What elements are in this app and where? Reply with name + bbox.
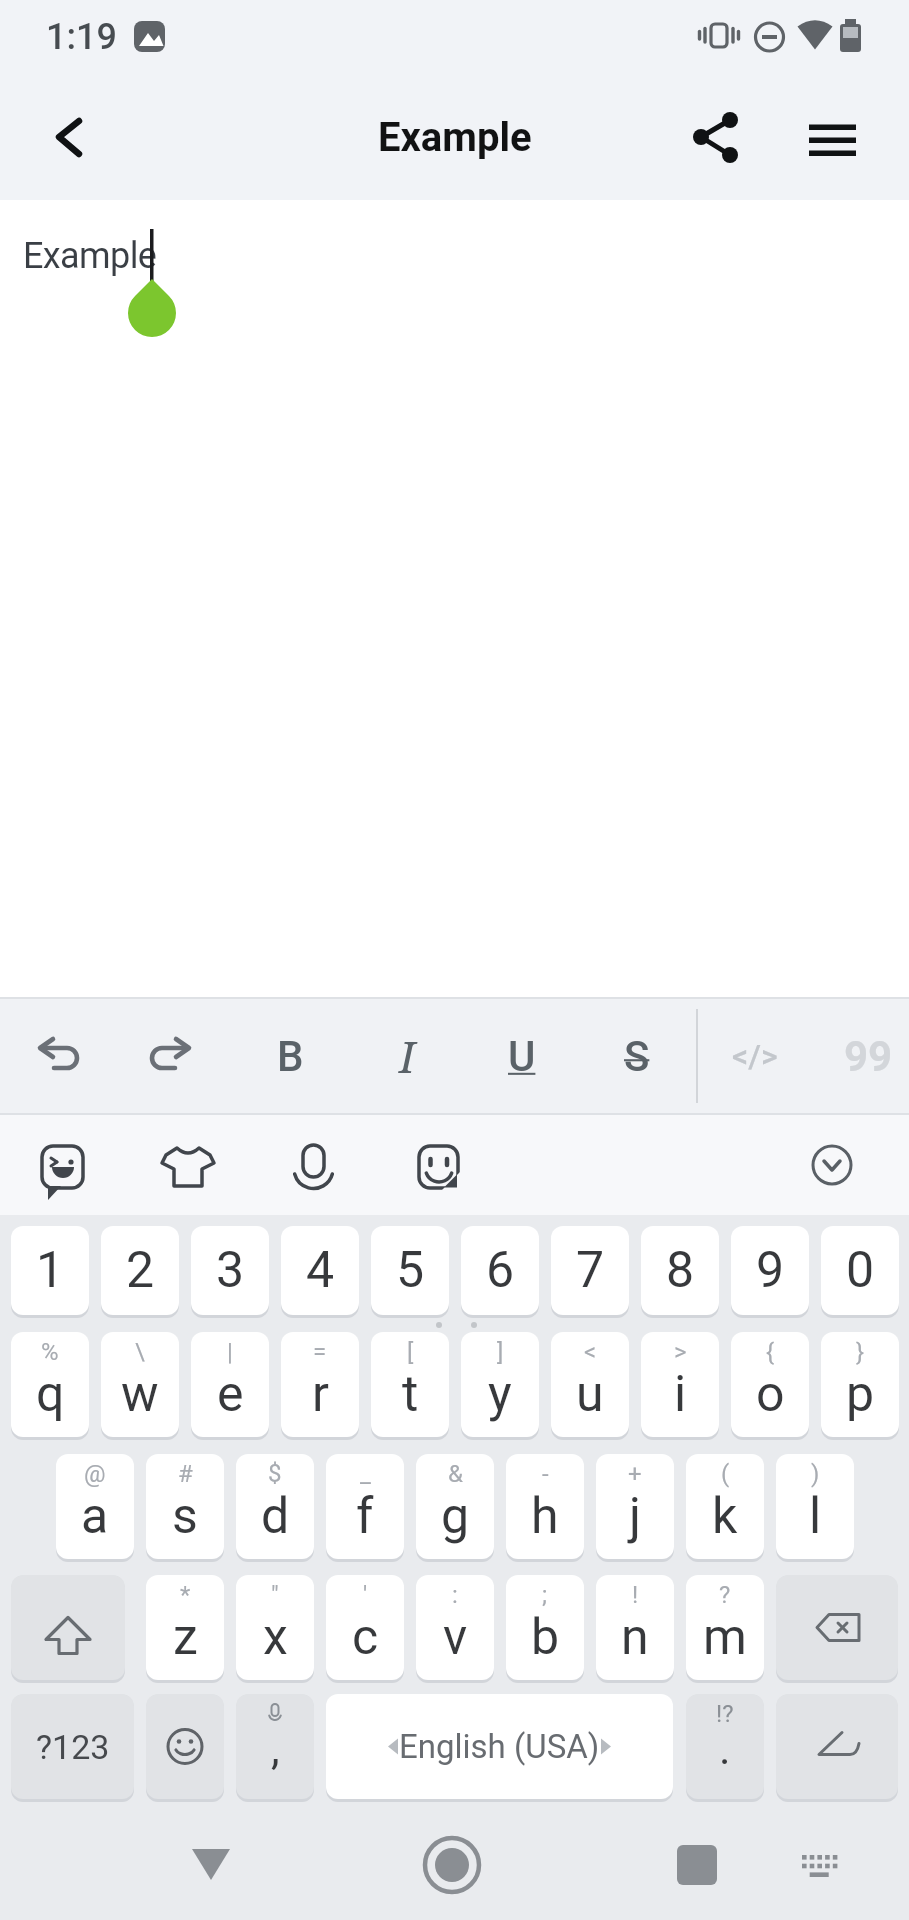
button[interactable]: !? xyxy=(686,1694,764,1799)
button[interactable]: + xyxy=(596,1454,674,1559)
staticText: 2 xyxy=(126,1241,155,1300)
staticText: q xyxy=(36,1365,65,1424)
button[interactable]: ( xyxy=(686,1454,764,1559)
button[interactable]: 9 xyxy=(731,1226,809,1315)
staticText: B xyxy=(277,1032,304,1081)
button[interactable]: * xyxy=(146,1575,224,1680)
staticText: 9 xyxy=(756,1241,785,1300)
button[interactable]: 5 xyxy=(371,1226,449,1315)
button[interactable]: I xyxy=(357,1006,457,1106)
button[interactable]: , xyxy=(236,1694,314,1799)
button[interactable] xyxy=(138,1115,238,1215)
button[interactable] xyxy=(768,1820,868,1920)
staticText: _ xyxy=(360,1460,371,1488)
button[interactable]: - xyxy=(506,1454,584,1559)
button[interactable]: 0 xyxy=(821,1226,899,1315)
staticText: U xyxy=(508,1032,536,1081)
staticText: = xyxy=(313,1338,327,1366)
button[interactable]: English (USA) xyxy=(326,1694,673,1799)
button[interactable]: 4 xyxy=(281,1226,359,1315)
staticText: Example xyxy=(378,114,532,161)
button[interactable]: 2 xyxy=(101,1226,179,1315)
button[interactable] xyxy=(782,1115,882,1215)
staticText: | xyxy=(227,1338,233,1366)
button[interactable]: > xyxy=(641,1332,719,1437)
staticText: x xyxy=(263,1608,288,1667)
staticText: @ xyxy=(84,1460,106,1488)
button[interactable]: & xyxy=(416,1454,494,1559)
staticText: > xyxy=(674,1338,687,1366)
button[interactable] xyxy=(11,1575,125,1680)
button[interactable]: : xyxy=(416,1575,494,1680)
staticText: r xyxy=(312,1365,329,1424)
button[interactable] xyxy=(776,1575,898,1680)
staticText: o xyxy=(756,1365,785,1424)
staticText: z xyxy=(173,1608,198,1667)
button[interactable]: ? xyxy=(686,1575,764,1680)
staticText: p xyxy=(846,1365,875,1424)
button[interactable]: 99 xyxy=(818,1006,909,1106)
staticText: 7 xyxy=(576,1241,605,1300)
button[interactable] xyxy=(783,87,883,187)
button[interactable]: " xyxy=(236,1575,314,1680)
staticText: $ xyxy=(268,1460,282,1488)
button[interactable]: B xyxy=(240,1006,340,1106)
button[interactable]: ?123 xyxy=(11,1694,134,1799)
staticText: I xyxy=(399,1026,416,1086)
button[interactable]: # xyxy=(146,1454,224,1559)
button[interactable]: 3 xyxy=(191,1226,269,1315)
button[interactable]: _ xyxy=(326,1454,404,1559)
button[interactable]: [ xyxy=(371,1332,449,1437)
button[interactable]: S xyxy=(587,1006,687,1106)
button[interactable]: ' xyxy=(326,1575,404,1680)
button[interactable]: $ xyxy=(236,1454,314,1559)
button[interactable]: ! xyxy=(596,1575,674,1680)
staticText: 99 xyxy=(844,1032,893,1081)
button[interactable] xyxy=(647,1820,747,1920)
button[interactable]: % xyxy=(11,1332,89,1437)
button[interactable] xyxy=(160,1820,260,1920)
staticText: * xyxy=(180,1581,191,1609)
staticText: % xyxy=(41,1338,59,1366)
staticText: t xyxy=(402,1365,419,1424)
staticText: k xyxy=(712,1487,738,1546)
staticText: } xyxy=(856,1338,865,1366)
staticText: ? xyxy=(719,1581,731,1609)
button[interactable]: ] xyxy=(461,1332,539,1437)
staticText: g xyxy=(441,1487,470,1546)
button[interactable]: 8 xyxy=(641,1226,719,1315)
staticText: ] xyxy=(497,1338,504,1366)
button[interactable]: \ xyxy=(101,1332,179,1437)
button[interactable] xyxy=(405,1820,505,1920)
button[interactable]: | xyxy=(191,1332,269,1437)
button[interactable] xyxy=(388,1115,488,1215)
button[interactable]: @ xyxy=(56,1454,134,1559)
button[interactable] xyxy=(146,1694,224,1799)
staticText: : xyxy=(452,1581,458,1609)
staticText: 6 xyxy=(486,1241,515,1300)
button[interactable]: U xyxy=(472,1006,572,1106)
button[interactable]: = xyxy=(281,1332,359,1437)
staticText: { xyxy=(766,1338,775,1366)
button[interactable]: 1 xyxy=(11,1226,89,1315)
staticText: u xyxy=(576,1365,604,1424)
button[interactable]: ; xyxy=(506,1575,584,1680)
staticText: \ xyxy=(135,1338,145,1366)
button[interactable]: { xyxy=(731,1332,809,1437)
staticText: < xyxy=(584,1338,597,1366)
staticText: e xyxy=(217,1365,244,1424)
button[interactable]: ) xyxy=(776,1454,854,1559)
staticText: ' xyxy=(363,1581,368,1609)
button[interactable]: </> xyxy=(705,1006,805,1106)
button[interactable] xyxy=(664,87,764,187)
button[interactable] xyxy=(18,87,118,187)
button[interactable]: 6 xyxy=(461,1226,539,1315)
button[interactable]: } xyxy=(821,1332,899,1437)
button[interactable] xyxy=(263,1115,363,1215)
button[interactable]: 7 xyxy=(551,1226,629,1315)
staticText: y xyxy=(488,1365,512,1424)
button[interactable] xyxy=(776,1694,898,1799)
button[interactable] xyxy=(12,1115,112,1215)
staticText: ( xyxy=(721,1460,730,1488)
button[interactable]: < xyxy=(551,1332,629,1437)
